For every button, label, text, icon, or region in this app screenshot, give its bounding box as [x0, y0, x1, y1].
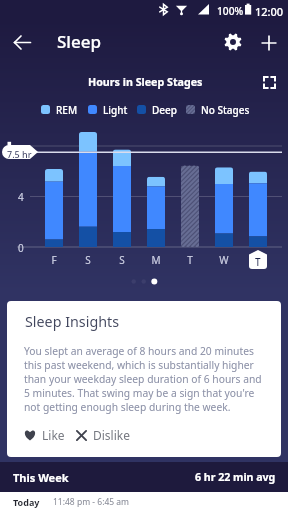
staticText: 7.5 hr: [7, 148, 32, 160]
button[interactable]: Like: [24, 425, 65, 445]
staticText: 11:48 pm - 6:45 am: [53, 496, 130, 508]
button[interactable]: Expand chart: [256, 69, 282, 95]
button[interactable]: T: [249, 250, 267, 269]
button[interactable]: Dislike: [76, 425, 130, 445]
button[interactable]: Deep: [137, 102, 177, 117]
staticText: This Week: [13, 470, 69, 485]
staticText: W: [215, 253, 233, 267]
staticText: S: [79, 253, 97, 267]
staticText: 6 hr 22 min avg: [195, 470, 276, 484]
button[interactable]: Sleep Insights: [7, 301, 281, 457]
staticText: Like: [42, 427, 65, 443]
staticText: Hours in Sleep Stages: [88, 75, 203, 90]
button[interactable]: This Week: [0, 462, 288, 492]
staticText: T: [255, 255, 261, 269]
staticText: M: [147, 253, 165, 267]
staticText: No Stages: [201, 103, 250, 117]
button[interactable]: Add: [251, 25, 287, 61]
staticText: Dislike: [93, 427, 130, 443]
staticText: Light: [103, 103, 128, 117]
staticText: 0: [18, 241, 24, 255]
staticText: F: [45, 253, 63, 267]
staticText: Sleep: [57, 30, 101, 53]
staticText: Deep: [152, 103, 177, 117]
staticText: T: [181, 253, 199, 267]
button[interactable]: REM: [41, 102, 78, 117]
staticText: 4: [18, 190, 24, 204]
staticText: S: [113, 253, 131, 267]
staticText: 100%: [217, 4, 244, 18]
button[interactable]: Settings: [215, 24, 251, 60]
button[interactable]: Back: [4, 24, 40, 60]
staticText: Today: [13, 496, 40, 508]
staticText: You slept an average of 8 hours and 20 m…: [24, 344, 266, 414]
button[interactable]: No Stages: [186, 102, 250, 117]
button[interactable]: Light: [88, 102, 128, 117]
staticText: Sleep Insights: [25, 312, 120, 331]
staticText: REM: [56, 103, 78, 117]
button[interactable]: Today: [0, 492, 288, 512]
staticText: 12:00: [255, 4, 284, 19]
